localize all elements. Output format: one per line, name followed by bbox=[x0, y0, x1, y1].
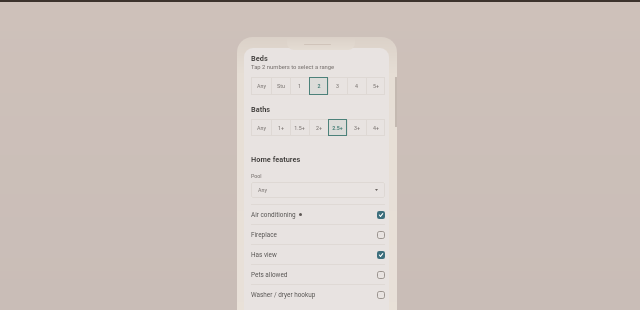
button[interactable]: Stu bbox=[271, 77, 290, 95]
staticText: 4 bbox=[355, 83, 358, 89]
staticText: Stu bbox=[277, 83, 285, 89]
staticText: Air conditioning bbox=[251, 211, 296, 219]
staticText: Pets allowed bbox=[251, 271, 288, 279]
staticText: Pool bbox=[251, 173, 262, 179]
button[interactable]: 1 bbox=[290, 77, 309, 95]
button[interactable]: 1+ bbox=[271, 119, 290, 136]
staticText: 1+ bbox=[278, 125, 284, 131]
staticText: Home features bbox=[251, 155, 301, 164]
staticText: 2+ bbox=[316, 125, 322, 131]
staticText: Any bbox=[257, 125, 266, 131]
button[interactable]: Any bbox=[251, 77, 271, 95]
button[interactable]: 2 bbox=[309, 77, 328, 95]
button[interactable]: 4+ bbox=[366, 119, 385, 136]
button[interactable]: Air conditioning bbox=[251, 205, 385, 224]
button[interactable]: 3+ bbox=[347, 119, 366, 136]
staticText: Tap 2 numbers to select a range bbox=[251, 64, 335, 71]
staticText: Fireplace bbox=[251, 231, 277, 239]
staticText: Baths bbox=[251, 105, 271, 114]
staticText: Washer / dryer hookup bbox=[251, 291, 316, 299]
button[interactable]: 2+ bbox=[309, 119, 328, 136]
staticText: Beds bbox=[251, 54, 268, 63]
button[interactable]: Any bbox=[251, 119, 271, 136]
button[interactable]: 4 bbox=[347, 77, 366, 95]
button[interactable]: Washer / dryer hookup bbox=[251, 285, 385, 304]
button[interactable]: Any bbox=[251, 182, 385, 198]
staticText: Any bbox=[258, 187, 267, 193]
staticText: 1.5+ bbox=[294, 125, 305, 131]
staticText: 4+ bbox=[373, 125, 379, 131]
button[interactable]: Fireplace bbox=[251, 225, 385, 244]
staticText: 2.5+ bbox=[332, 125, 343, 131]
button[interactable]: Has view bbox=[251, 245, 385, 264]
staticText: 1 bbox=[298, 83, 301, 89]
staticText: Has view bbox=[251, 251, 277, 259]
button[interactable]: 2.5+ bbox=[328, 119, 347, 136]
button[interactable]: 3 bbox=[328, 77, 347, 95]
button[interactable]: Pets allowed bbox=[251, 265, 385, 284]
staticText: 3+ bbox=[354, 125, 360, 131]
button[interactable]: 1.5+ bbox=[290, 119, 309, 136]
button[interactable]: 5+ bbox=[366, 77, 385, 95]
staticText: 2 bbox=[317, 83, 321, 89]
staticText: 3 bbox=[336, 83, 339, 89]
staticText: 5+ bbox=[373, 83, 379, 89]
staticText: Any bbox=[257, 83, 266, 89]
